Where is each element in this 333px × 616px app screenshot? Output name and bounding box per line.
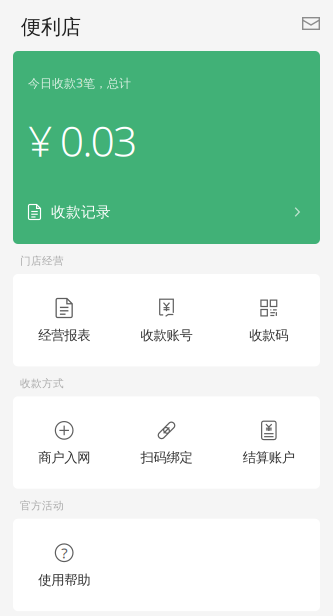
staticText: 收款账号	[140, 327, 192, 343]
staticText: 今日收款3笔，总计	[28, 75, 131, 91]
button[interactable]: 结算账户	[218, 396, 320, 489]
button[interactable]: Messages	[295, 10, 327, 41]
staticText: 使用帮助	[38, 572, 90, 588]
staticText: 便利店	[21, 15, 81, 39]
button[interactable]: 经营报表	[13, 274, 115, 366]
staticText: 经营报表	[38, 327, 90, 343]
staticText: 收款记录	[51, 203, 111, 221]
staticText: 商户入网	[38, 449, 90, 466]
button[interactable]: 收款码	[218, 274, 320, 366]
staticText: 收款方式	[20, 377, 64, 390]
staticText: 结算账户	[243, 449, 295, 466]
button[interactable]: 今日收款3笔，总计	[13, 51, 320, 244]
staticText: 官方活动	[20, 499, 64, 512]
staticText: ?	[61, 543, 67, 562]
button[interactable]: 商户入网	[13, 396, 115, 489]
staticText: 收款码	[249, 327, 288, 343]
staticText: ¥ 0.03	[28, 112, 137, 169]
staticText: 扫码绑定	[140, 449, 192, 466]
staticText: 门店经营	[20, 254, 64, 267]
button[interactable]: ?	[13, 519, 115, 611]
button[interactable]: 扫码绑定	[115, 396, 218, 489]
button[interactable]: 收款账号	[115, 274, 218, 366]
